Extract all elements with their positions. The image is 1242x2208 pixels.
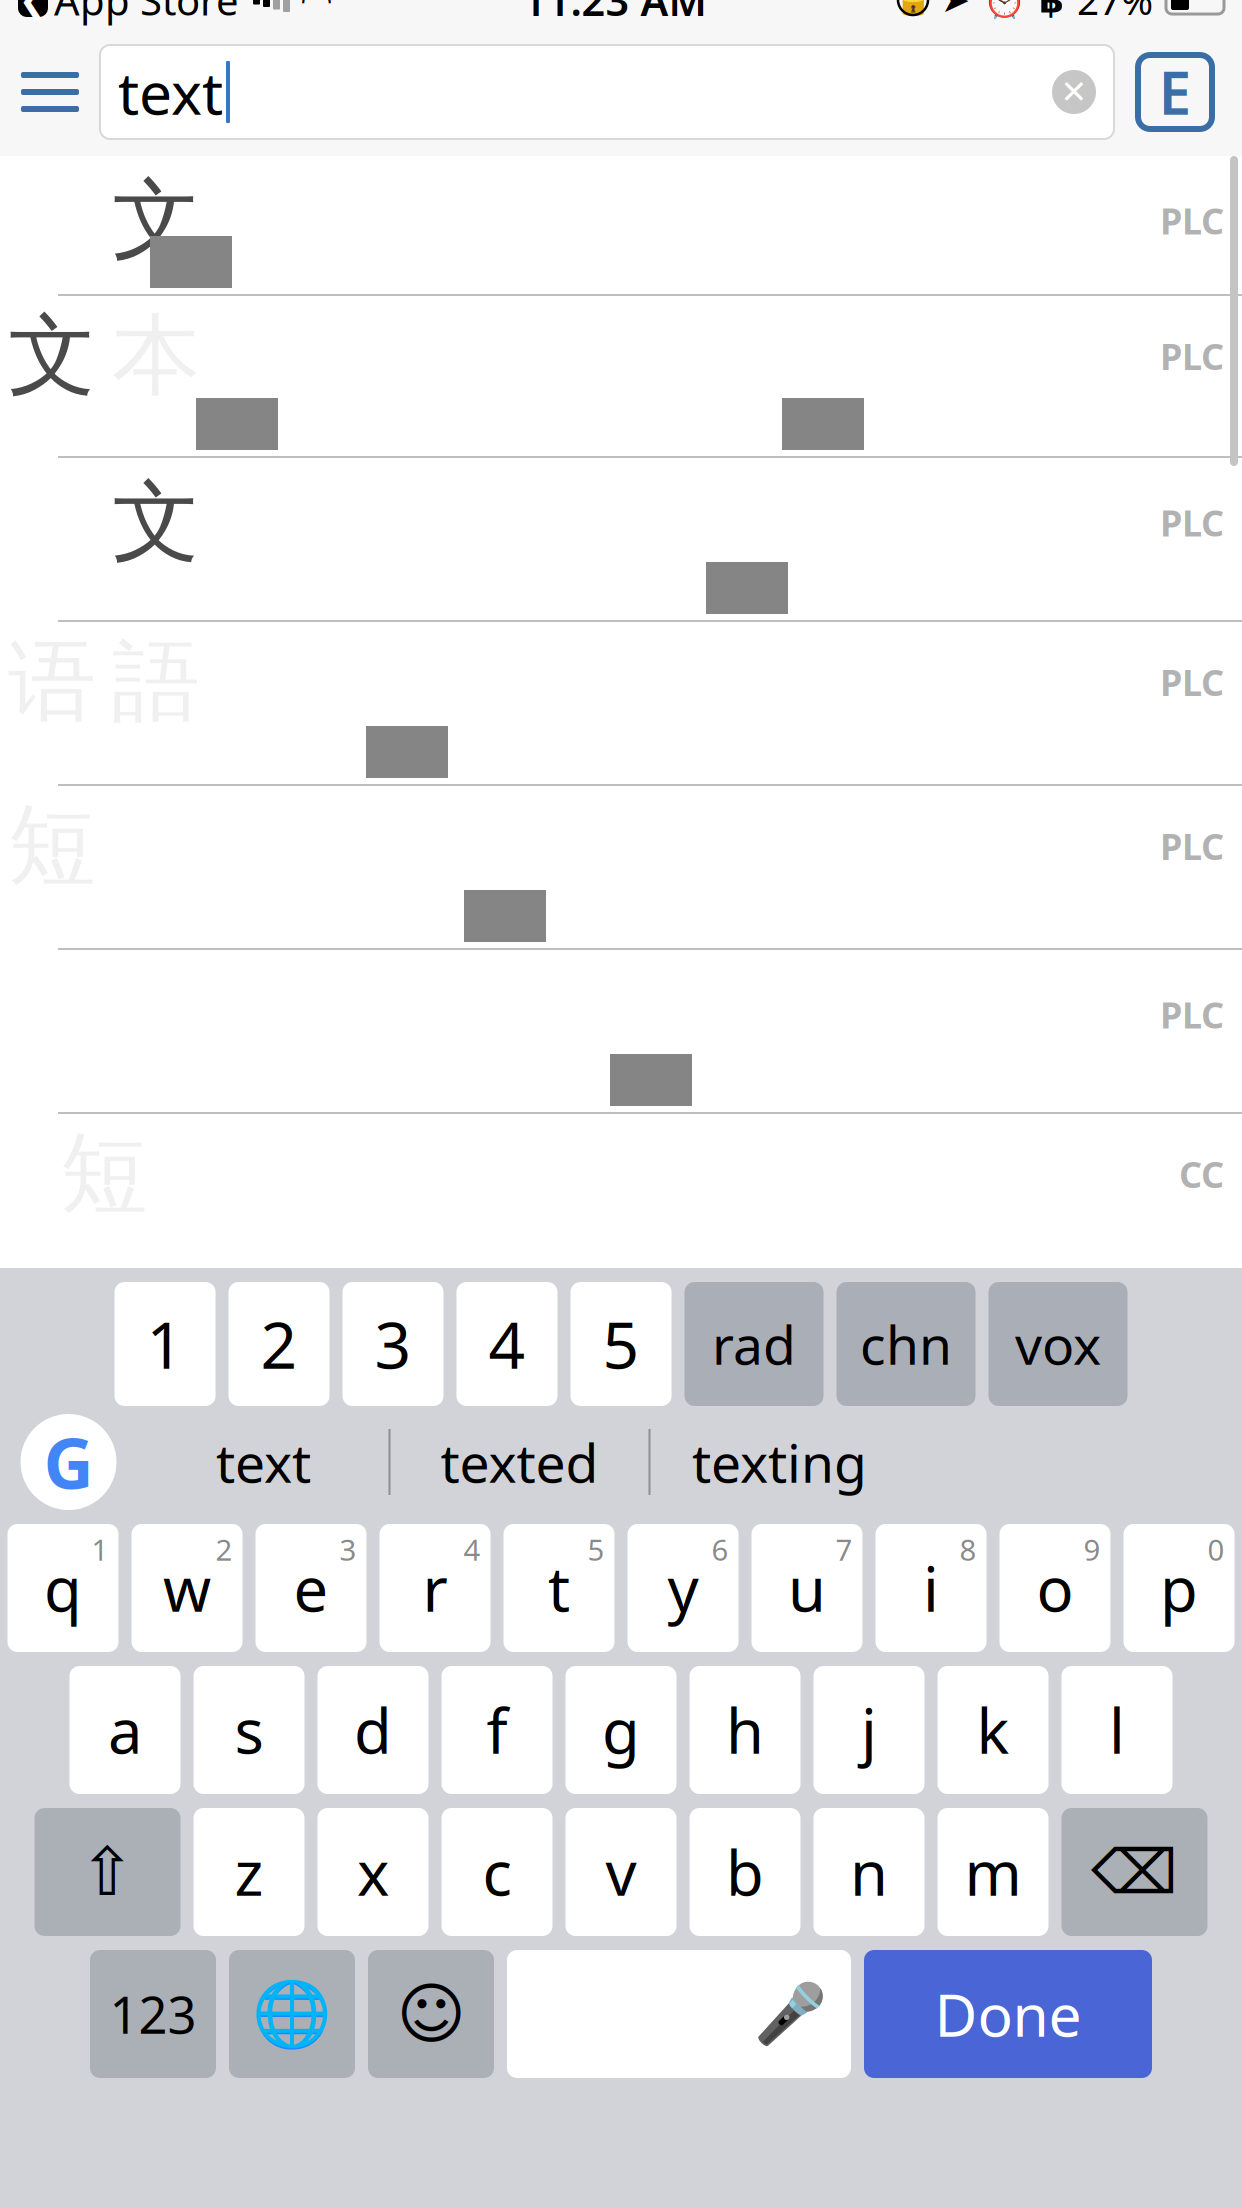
button[interactable]: o — [999, 1524, 1110, 1652]
button[interactable]: n — [813, 1808, 924, 1936]
button[interactable]: English input — [1114, 47, 1236, 137]
staticText: ⏰ — [983, 0, 1026, 20]
button[interactable]: u — [751, 1524, 862, 1652]
staticText: o — [1036, 1547, 1073, 1629]
staticText: ⌫ — [1091, 1837, 1178, 1907]
staticText: z — [234, 1831, 263, 1913]
button[interactable]: Shift — [34, 1808, 180, 1936]
staticText: ➤ — [941, 0, 970, 20]
button[interactable]: vox — [988, 1282, 1127, 1406]
staticText: PLC — [1160, 332, 1224, 380]
button[interactable]: Done — [864, 1950, 1152, 2078]
staticText: w — [163, 1547, 211, 1629]
staticText: 4 — [463, 1530, 480, 1569]
staticText: 0 — [1207, 1530, 1224, 1569]
button[interactable]: texted — [390, 1407, 648, 1517]
staticText: 本 — [112, 302, 200, 410]
staticText: d — [354, 1689, 392, 1771]
staticText: chn — [860, 1309, 952, 1379]
button[interactable]: 5 — [570, 1282, 671, 1406]
staticText: rad — [712, 1309, 796, 1379]
button[interactable]: k — [937, 1666, 1048, 1794]
button[interactable]: s — [193, 1666, 304, 1794]
staticText: 6 — [711, 1530, 728, 1569]
staticText: vox — [1015, 1309, 1101, 1379]
staticText: G — [43, 1416, 93, 1508]
staticText: PLC — [1160, 990, 1224, 1038]
button[interactable]: a — [69, 1666, 180, 1794]
staticText: 文 — [112, 166, 200, 274]
button[interactable]: e — [255, 1524, 366, 1652]
button[interactable]: x — [317, 1808, 428, 1936]
staticText: p — [1160, 1547, 1198, 1629]
staticText: 123 — [109, 1980, 196, 2048]
button[interactable]: d — [317, 1666, 428, 1794]
staticText: 1 — [91, 1530, 108, 1569]
button[interactable]: chn — [836, 1282, 975, 1406]
button[interactable]: y — [627, 1524, 738, 1652]
staticText: v — [605, 1831, 636, 1913]
staticText: 4 — [488, 1301, 525, 1386]
staticText: 3 — [374, 1301, 411, 1386]
staticText: h — [726, 1689, 764, 1771]
button[interactable]: Google search — [0, 1407, 138, 1517]
staticText: s — [234, 1689, 263, 1771]
staticText: x — [357, 1831, 389, 1913]
button[interactable]: m — [937, 1808, 1048, 1936]
button[interactable]: b — [689, 1808, 800, 1936]
button[interactable]: p — [1123, 1524, 1234, 1652]
button[interactable]: Next keyboard — [229, 1950, 355, 2078]
staticText: 語 — [112, 628, 200, 736]
button[interactable]: Delete — [1061, 1808, 1207, 1936]
button[interactable]: w — [131, 1524, 242, 1652]
staticText: u — [788, 1547, 826, 1629]
staticText: 1 — [146, 1301, 183, 1386]
button[interactable]: v — [565, 1808, 676, 1936]
staticText: PLC — [1160, 196, 1224, 244]
staticText: b — [726, 1831, 764, 1913]
button[interactable]: Menu — [0, 47, 100, 137]
staticText: g — [602, 1689, 640, 1771]
button[interactable]: Emoji — [368, 1950, 494, 2078]
staticText: PLC — [1160, 658, 1224, 706]
button[interactable]: Numbers — [90, 1950, 216, 2078]
staticText: l — [1109, 1689, 1125, 1771]
button[interactable]: f — [441, 1666, 552, 1794]
button[interactable]: j — [813, 1666, 924, 1794]
button[interactable]: g — [565, 1666, 676, 1794]
button[interactable]: i — [875, 1524, 986, 1652]
staticText: 🔒 — [894, 0, 931, 17]
button[interactable]: Space, dictation — [507, 1950, 851, 2078]
staticText: a — [108, 1689, 142, 1771]
staticText: text — [118, 53, 223, 131]
staticText: k — [976, 1689, 1009, 1771]
staticText: ✕ — [1060, 74, 1087, 110]
button[interactable]: 4 — [456, 1282, 557, 1406]
staticText: 语 — [8, 628, 96, 736]
button[interactable]: t — [503, 1524, 614, 1652]
button[interactable]: q — [7, 1524, 118, 1652]
button[interactable]: 1 — [114, 1282, 215, 1406]
button[interactable]: z — [193, 1808, 304, 1936]
button[interactable]: r — [379, 1524, 490, 1652]
staticText: 短 — [60, 1120, 148, 1228]
staticText: y — [667, 1547, 698, 1629]
staticText: t — [548, 1547, 570, 1629]
button[interactable]: text — [138, 1407, 388, 1517]
staticText: texted — [440, 1427, 598, 1497]
staticText: e — [293, 1547, 328, 1629]
button[interactable]: 2 — [228, 1282, 329, 1406]
button[interactable]: 3 — [342, 1282, 443, 1406]
staticText: E — [1158, 53, 1191, 131]
button[interactable]: Back to App Store — [18, 0, 239, 26]
button[interactable]: l — [1061, 1666, 1172, 1794]
staticText: texting — [692, 1427, 867, 1497]
staticText: c — [482, 1831, 511, 1913]
button[interactable]: rad — [684, 1282, 823, 1406]
button[interactable]: text — [100, 45, 1114, 139]
button[interactable]: c — [441, 1808, 552, 1936]
button[interactable]: texting — [650, 1407, 908, 1517]
button[interactable]: h — [689, 1666, 800, 1794]
staticText: CC — [1179, 1150, 1224, 1198]
staticText: ⇧ — [79, 1834, 135, 1910]
